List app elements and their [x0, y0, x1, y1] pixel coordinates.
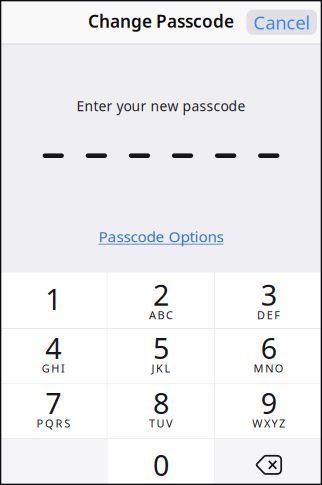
- button[interactable]: 4: [0, 329, 107, 384]
- button[interactable]: Delete: [215, 439, 322, 485]
- staticText: Enter your new passcode: [76, 96, 245, 115]
- button[interactable]: Cancel: [246, 10, 317, 35]
- staticText: 4: [45, 328, 61, 367]
- staticText: WXYZ: [252, 416, 285, 431]
- staticText: DEF: [257, 308, 280, 322]
- staticText: 7: [45, 383, 61, 422]
- button[interactable]: 2: [107, 272, 214, 328]
- button[interactable]: 7: [0, 384, 107, 438]
- staticText: TUV: [149, 416, 173, 431]
- button[interactable]: Passcode Options: [98, 226, 223, 247]
- button[interactable]: 5: [107, 329, 214, 384]
- button[interactable]: 0: [107, 439, 214, 485]
- staticText: 9: [261, 383, 277, 422]
- button[interactable]: 8: [107, 384, 214, 438]
- button[interactable]: 6: [215, 329, 322, 384]
- staticText: JKL: [151, 361, 171, 376]
- staticText: MNO: [254, 361, 284, 376]
- staticText: 0: [153, 445, 169, 484]
- staticText: Change Passcode: [88, 9, 234, 33]
- staticText: GHI: [42, 361, 65, 376]
- staticText: PQRS: [36, 416, 70, 431]
- staticText: 6: [261, 328, 277, 367]
- staticText: 2: [153, 275, 169, 314]
- staticText: 1: [45, 279, 61, 318]
- staticText: Cancel: [253, 10, 310, 35]
- staticText: ABC: [149, 308, 173, 322]
- staticText: Passcode Options: [98, 226, 223, 247]
- button[interactable]: 3: [215, 272, 322, 328]
- staticText: 3: [261, 275, 277, 314]
- staticText: 8: [153, 383, 169, 422]
- button[interactable]: 9: [215, 384, 322, 438]
- button[interactable]: 1: [0, 272, 107, 328]
- staticText: 5: [153, 328, 169, 367]
